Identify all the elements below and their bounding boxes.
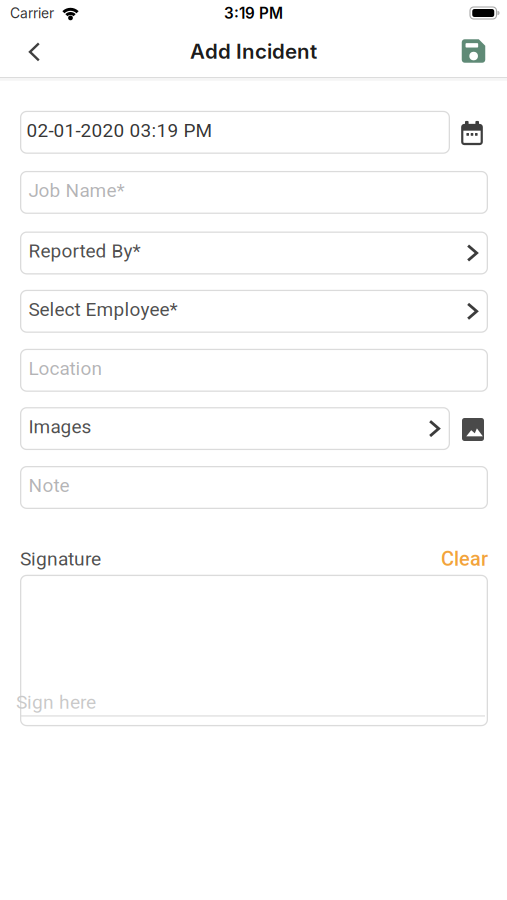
button[interactable]: Add image [462,418,484,441]
staticText: Clear [441,547,488,571]
staticText: Signature [20,548,101,570]
button[interactable]: Back [17,35,51,69]
button[interactable]: Job Name* [20,171,488,214]
staticText: 02-01-2020 03:19 PM [26,119,212,142]
staticText: Location [28,357,101,380]
staticText: Images [28,416,91,438]
staticText: Sign here [16,691,96,713]
staticText: 3:19 PM [224,4,283,22]
staticText: Add Incident [190,39,317,64]
button[interactable]: Pick date [461,121,482,145]
staticText: Reported By* [28,240,140,262]
staticText: Select Employee* [28,298,177,321]
button[interactable]: Sign here [20,575,488,726]
button[interactable]: Reported By* [20,231,488,274]
staticText: Note [28,474,69,497]
button[interactable]: Location [20,349,488,392]
button[interactable]: Note [20,466,488,509]
button[interactable]: Save [456,34,490,68]
button[interactable]: Clear [441,547,488,571]
staticText: Job Name* [28,179,124,202]
button[interactable]: 02-01-2020 03:19 PM [20,111,450,154]
button[interactable]: Select Employee* [20,290,488,333]
staticText: Carrier [10,5,54,22]
button[interactable]: Images [20,407,450,450]
